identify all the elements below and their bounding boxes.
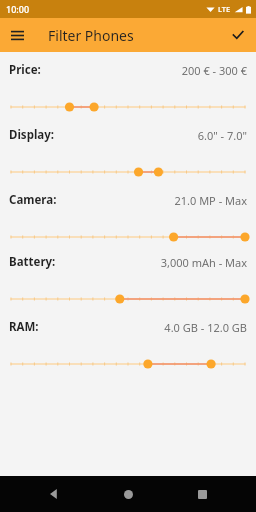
button[interactable]: Range slider bbox=[0, 230, 256, 244]
staticText: 200 € - 300 € bbox=[181, 63, 247, 78]
staticText: Battery: bbox=[9, 254, 56, 270]
button[interactable]: Apply filters bbox=[226, 23, 250, 47]
button[interactable]: Home bbox=[108, 476, 148, 512]
staticText: 21.0 MP - Max bbox=[174, 193, 247, 208]
staticText: RAM: bbox=[9, 319, 39, 335]
button[interactable]: Recent apps bbox=[182, 476, 222, 512]
button[interactable]: Open navigation menu bbox=[5, 23, 29, 47]
button[interactable]: Back bbox=[34, 476, 74, 512]
button[interactable]: Range slider bbox=[0, 100, 256, 114]
staticText: Display: bbox=[9, 127, 55, 143]
staticText: 10:00 bbox=[6, 3, 30, 15]
staticText: Price: bbox=[9, 62, 41, 78]
staticText: LTE bbox=[218, 4, 231, 14]
staticText: Camera: bbox=[9, 192, 57, 208]
button[interactable]: Range slider bbox=[0, 357, 256, 371]
staticText: 3,000 mAh - Max bbox=[160, 255, 247, 270]
staticText: Filter Phones bbox=[48, 26, 134, 45]
staticText: 6.0" - 7.0" bbox=[197, 128, 247, 143]
staticText: 4.0 GB - 12.0 GB bbox=[164, 320, 247, 335]
button[interactable]: Range slider bbox=[0, 292, 256, 306]
button[interactable]: Range slider bbox=[0, 165, 256, 179]
